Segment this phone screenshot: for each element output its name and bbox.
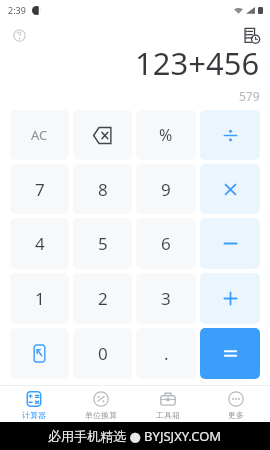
button[interactable]: 计算器 <box>0 386 67 420</box>
staticText: 4 <box>35 232 45 255</box>
button[interactable]: AC <box>10 110 69 160</box>
button[interactable]: Scientific mode <box>10 328 69 379</box>
button[interactable]: Minus <box>200 218 260 269</box>
staticText: 工具箱 <box>156 410 180 420</box>
button[interactable]: Backspace <box>73 110 132 160</box>
button[interactable]: History <box>240 24 262 46</box>
button[interactable]: 5 <box>73 218 132 269</box>
button[interactable]: 更多 <box>202 386 270 420</box>
staticText: 2:39 <box>8 4 26 16</box>
button[interactable]: 1 <box>10 273 69 324</box>
button[interactable]: 7 <box>10 164 69 214</box>
button[interactable]: 单位换算 <box>67 386 134 420</box>
staticText: 123+456 <box>135 42 260 84</box>
button[interactable]: Equals <box>200 328 260 379</box>
button[interactable]: Divide <box>200 110 260 160</box>
staticText: 5 <box>98 232 108 255</box>
button[interactable]: 3 <box>136 273 196 324</box>
staticText: 6 <box>161 232 171 255</box>
staticText: 2 <box>98 287 108 310</box>
staticText: 3 <box>161 287 171 310</box>
staticText: 9 <box>161 178 171 201</box>
staticText: % <box>159 124 173 146</box>
staticText: 必用手机精选 ● BYJSJXY.COM <box>48 427 222 445</box>
button[interactable]: % <box>136 110 196 160</box>
staticText: 0 <box>98 342 108 365</box>
button[interactable]: 9 <box>136 164 196 214</box>
button[interactable]: Plus <box>200 273 260 324</box>
staticText: 计算器 <box>22 410 46 420</box>
staticText: 更多 <box>228 410 244 420</box>
button[interactable]: Help <box>10 26 28 44</box>
button[interactable]: 2 <box>73 273 132 324</box>
button[interactable]: Multiply <box>200 164 260 214</box>
button[interactable]: . <box>136 328 196 379</box>
staticText: 1 <box>35 287 45 310</box>
staticText: 7 <box>35 178 45 201</box>
staticText: . <box>164 342 169 365</box>
staticText: 单位换算 <box>85 410 117 420</box>
staticText: 579 <box>239 88 260 104</box>
button[interactable]: 4 <box>10 218 69 269</box>
staticText: AC <box>31 126 48 144</box>
button[interactable]: 工具箱 <box>134 386 202 420</box>
staticText: 8 <box>98 178 108 201</box>
button[interactable]: 0 <box>73 328 132 379</box>
button[interactable]: 6 <box>136 218 196 269</box>
button[interactable]: 8 <box>73 164 132 214</box>
